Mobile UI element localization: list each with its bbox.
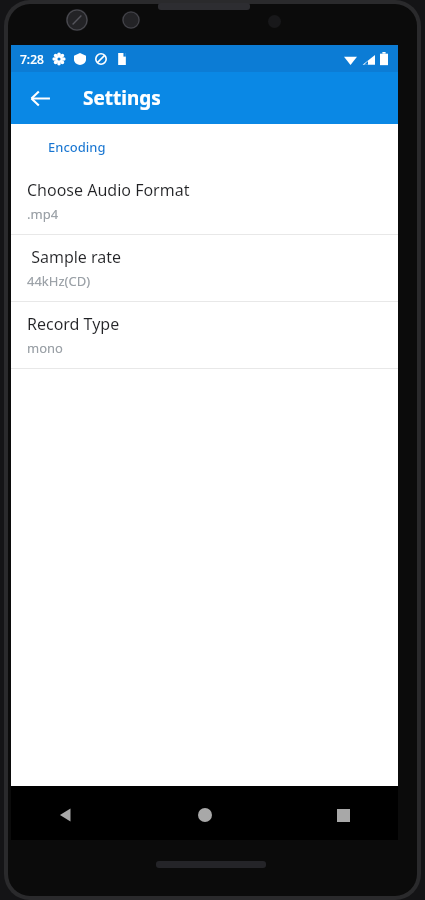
staticText: Sample rate xyxy=(27,246,122,268)
staticText: Record Type xyxy=(27,313,120,335)
button[interactable]: Recent apps xyxy=(322,794,364,836)
staticText: Encoding xyxy=(48,138,106,156)
button[interactable]: Sample rate xyxy=(11,235,398,301)
button[interactable]: Back xyxy=(23,81,57,115)
staticText: mono xyxy=(27,339,63,357)
staticText: Choose Audio Format xyxy=(27,179,190,201)
staticText: 7:28 xyxy=(20,51,44,67)
button[interactable]: Choose Audio Format xyxy=(11,168,398,234)
button[interactable]: Home xyxy=(184,794,226,836)
staticText: 44kHz(CD) xyxy=(27,272,91,290)
button[interactable]: Back xyxy=(45,794,87,836)
staticText: Settings xyxy=(83,85,161,111)
button[interactable]: Record Type xyxy=(11,302,398,368)
staticText: .mp4 xyxy=(27,205,59,223)
